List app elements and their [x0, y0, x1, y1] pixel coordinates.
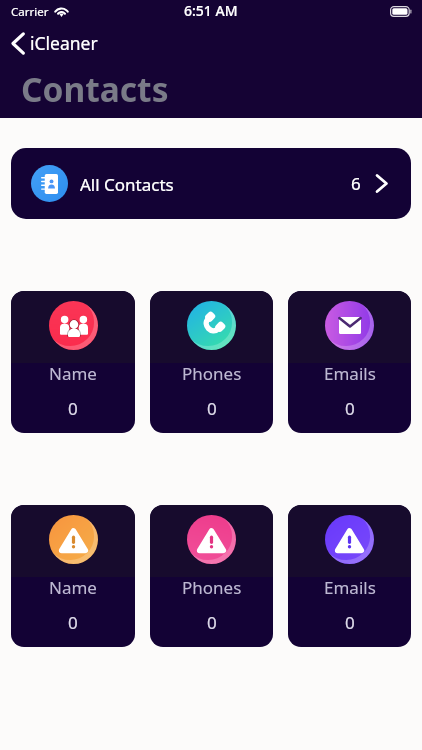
button[interactable]: Emails — [288, 505, 411, 647]
button[interactable]: Back — [0, 29, 110, 57]
staticText: 0 — [207, 397, 217, 420]
staticText: 0 — [345, 397, 355, 420]
staticText: 6:51 AM — [184, 1, 238, 20]
staticText: Contacts — [21, 66, 169, 112]
staticText: 6 — [351, 172, 361, 195]
staticText: Emails — [324, 576, 376, 599]
staticText: Name — [49, 576, 97, 599]
staticText: iCleaner — [30, 31, 98, 55]
button[interactable]: Name — [11, 505, 135, 647]
other: Battery — [390, 6, 412, 17]
staticText: All Contacts — [80, 173, 174, 196]
button[interactable]: Phones — [150, 505, 273, 647]
staticText: 0 — [68, 397, 78, 420]
other: Wi-Fi — [54, 6, 69, 17]
other: Back — [11, 32, 25, 55]
staticText: Phones — [182, 362, 242, 385]
staticText: Name — [49, 362, 97, 385]
staticText: 0 — [68, 611, 78, 634]
staticText: Carrier — [11, 4, 49, 18]
staticText: 0 — [345, 611, 355, 634]
button[interactable]: Phones — [150, 291, 273, 433]
staticText: Phones — [182, 576, 242, 599]
staticText: 0 — [207, 611, 217, 634]
button[interactable]: All Contacts — [11, 148, 411, 219]
button[interactable]: Emails — [288, 291, 411, 433]
staticText: Emails — [324, 362, 376, 385]
button[interactable]: Name — [11, 291, 135, 433]
